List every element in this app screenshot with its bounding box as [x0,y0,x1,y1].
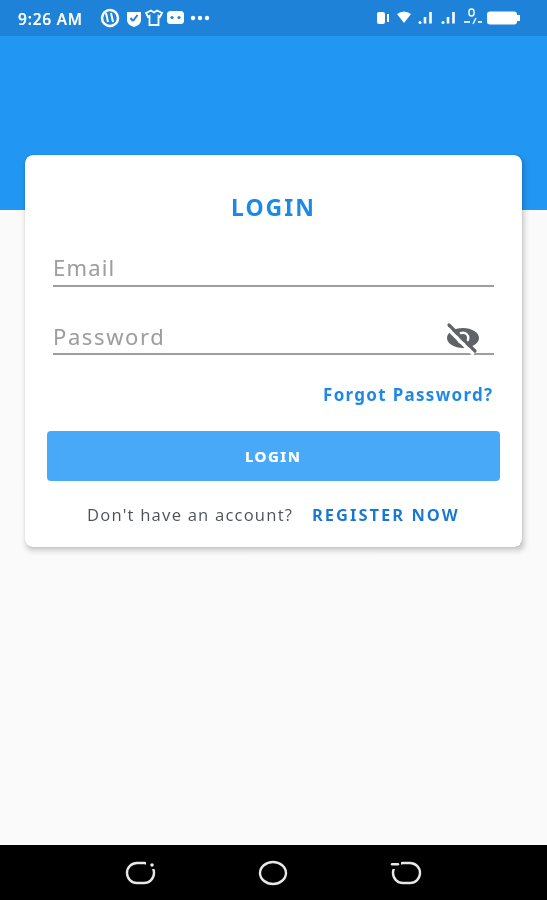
staticText: 9:26 AM [18,8,83,29]
staticText: Email [53,252,116,282]
staticText: LOGIN [245,446,302,466]
staticText: Password [53,321,166,351]
button[interactable]: Forgot Password? [323,383,494,406]
staticText: LOGIN [231,191,316,222]
button[interactable] [386,861,422,885]
button[interactable]: REGISTER NOW [312,503,460,525]
button[interactable]: Password [53,320,494,352]
staticText: Don't have an account? [87,503,294,525]
staticText: REGISTER NOW [312,503,460,525]
staticText: Forgot Password? [323,383,494,406]
button[interactable]: Email [53,251,494,283]
button[interactable]: LOGIN [47,431,500,481]
button[interactable] [440,320,484,354]
button[interactable] [125,861,161,885]
button[interactable] [256,861,290,885]
